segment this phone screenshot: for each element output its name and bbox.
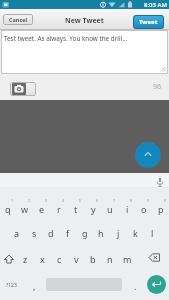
staticText: , [33, 280, 36, 292]
staticText: d [48, 227, 54, 239]
staticText: p [158, 203, 164, 215]
staticText: t [74, 203, 78, 215]
staticText: o [141, 203, 147, 215]
staticText: y [91, 203, 96, 215]
staticText: Test tweet. As always. You know the dril… [4, 34, 128, 43]
staticText: a [14, 227, 20, 239]
staticText: 5 [79, 198, 82, 203]
button[interactable] [135, 142, 161, 168]
staticText: m [123, 253, 132, 265]
staticText: 4 [62, 198, 65, 203]
staticText: . [134, 280, 137, 292]
staticText: k [133, 227, 138, 239]
staticText: b [90, 253, 96, 265]
staticText: 3 [45, 198, 48, 203]
staticText: 6 [96, 198, 99, 203]
button[interactable]: Tweet [133, 15, 164, 29]
staticText: e [39, 203, 45, 215]
staticText: l [151, 227, 154, 239]
staticText: x [40, 253, 45, 265]
staticText: w [21, 203, 29, 215]
staticText: h [98, 227, 104, 239]
staticText: g [82, 227, 88, 239]
staticText: 0 [164, 198, 167, 203]
staticText: q [5, 203, 11, 215]
staticText: 96 [153, 82, 162, 92]
staticText: c [57, 253, 62, 265]
staticText: i [126, 203, 129, 215]
button[interactable] [10, 82, 36, 96]
button[interactable]: Cancel [3, 14, 33, 25]
staticText: ?123 [6, 282, 17, 289]
staticText: r [57, 203, 61, 215]
staticText: 8 [130, 198, 133, 203]
staticText: 8:03 AM [144, 1, 167, 9]
staticText: 9 [147, 198, 150, 203]
button[interactable]: Test tweet. As always. You know the dril… [1, 30, 168, 74]
staticText: z [23, 253, 28, 265]
staticText: u [107, 203, 113, 215]
staticText: 7 [113, 198, 116, 203]
staticText: j [117, 227, 120, 239]
staticText: 2 [28, 198, 31, 203]
staticText: Tweet [139, 18, 158, 26]
staticText: Cancel [9, 16, 28, 23]
staticText: n [107, 253, 113, 265]
staticText: s [32, 227, 37, 239]
staticText: 1 [11, 198, 14, 203]
button[interactable] [147, 275, 166, 294]
staticText: v [74, 253, 79, 265]
staticText: f [66, 227, 70, 239]
staticText: New Tweet [65, 16, 104, 26]
